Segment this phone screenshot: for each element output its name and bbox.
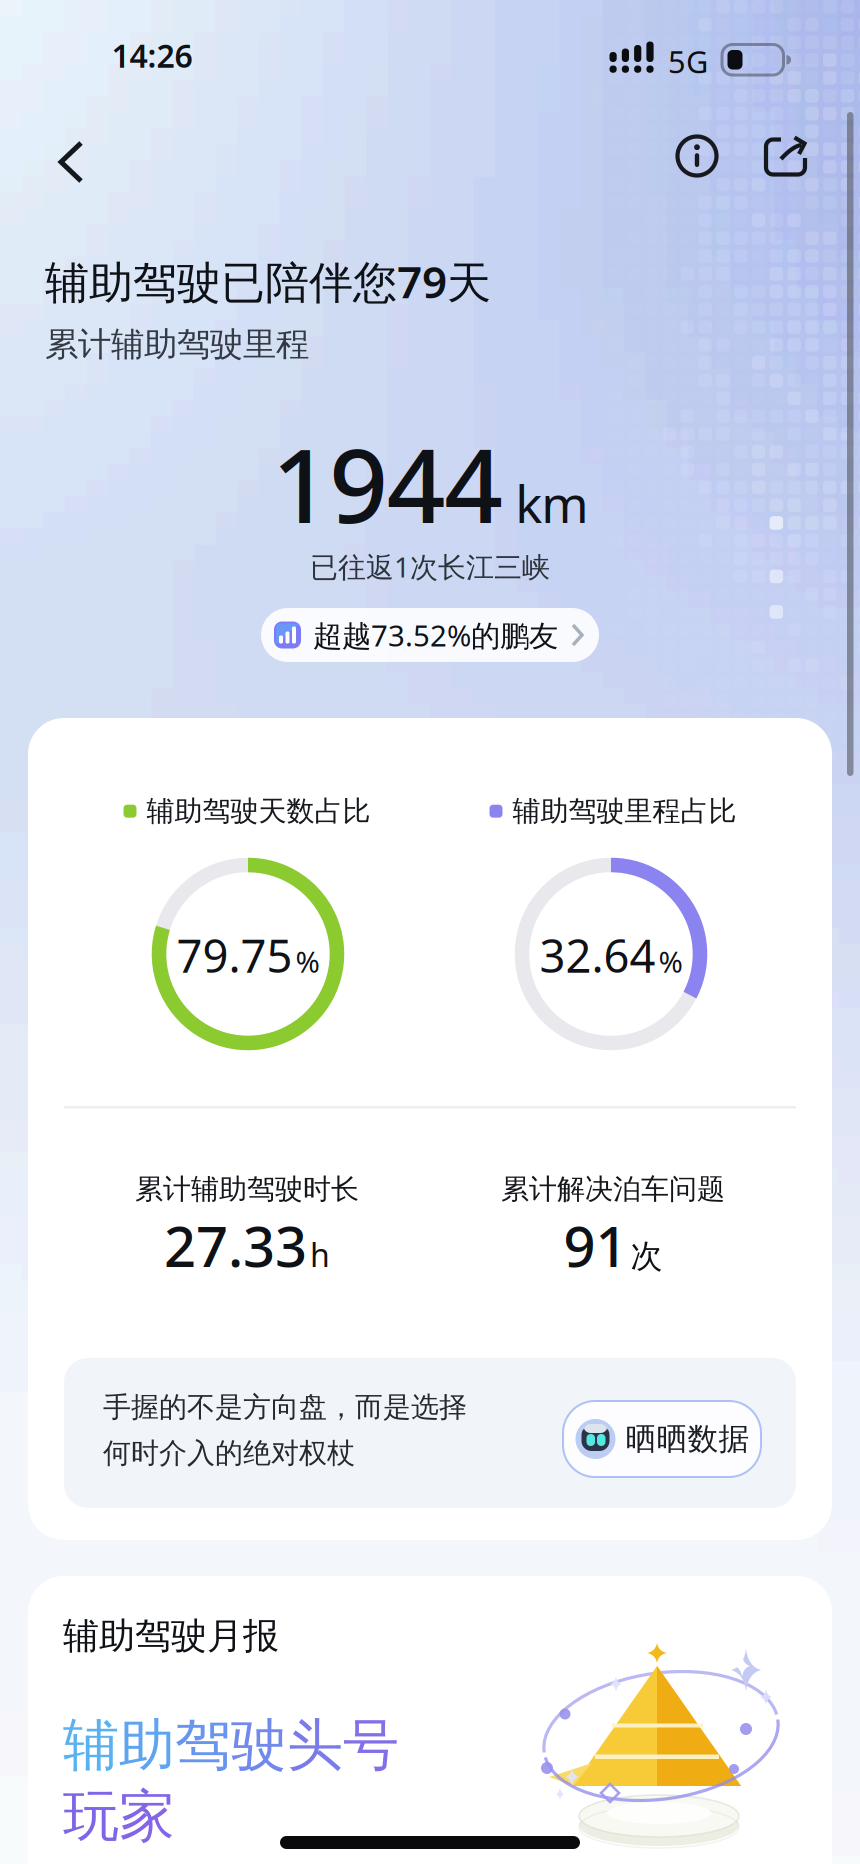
staticText: 何时介入的绝对权杖 [103, 1436, 355, 1470]
staticText: 头 [287, 1711, 343, 1780]
staticText: 27.33 [164, 1208, 307, 1282]
button[interactable]: Back [40, 131, 102, 193]
button[interactable]: 晒晒数据 [563, 1401, 761, 1477]
staticText: 累计解决泊车问题 [501, 1172, 725, 1206]
staticText: 5G [668, 41, 708, 82]
staticText: 超越73.52%的鹏友 [313, 615, 558, 654]
staticText: 驶 [231, 1711, 287, 1780]
staticText: 辅助驾驶天数占比 [146, 794, 370, 828]
staticText: 辅助驾驶里程占比 [512, 794, 736, 828]
staticText: 家 [119, 1782, 175, 1851]
staticText: 辅助驾驶月报 [63, 1614, 279, 1658]
staticText: 累计辅助驾驶里程 [45, 324, 309, 365]
staticText: % [295, 942, 319, 981]
staticText: 手握的不是方向盘，而是选择 [103, 1390, 467, 1424]
button[interactable]: Share [757, 128, 813, 184]
staticText: 1944 [272, 415, 503, 551]
staticText: 14:26 [111, 34, 192, 76]
staticText: 已往返1次长江三峡 [310, 548, 550, 585]
staticText: 驾 [175, 1711, 231, 1780]
staticText: 79.75 [176, 925, 292, 985]
staticText: 次 [630, 1237, 662, 1276]
staticText: 辅 [63, 1711, 119, 1780]
staticText: 晒晒数据 [625, 1420, 749, 1458]
staticText: km [515, 470, 588, 537]
staticText: 号 [343, 1711, 399, 1780]
staticText: 91 [563, 1208, 627, 1282]
staticText: 玩 [63, 1782, 119, 1851]
staticText: 辅助驾驶已陪伴您79天 [45, 252, 491, 310]
button[interactable]: 超越73.52%的鹏友 [261, 608, 599, 662]
staticText: h [310, 1233, 330, 1276]
staticText: % [658, 942, 682, 981]
button[interactable]: Info [667, 126, 727, 186]
staticText: 助 [119, 1711, 175, 1780]
staticText: 累计辅助驾驶时长 [135, 1172, 359, 1206]
staticText: 32.64 [539, 925, 655, 985]
